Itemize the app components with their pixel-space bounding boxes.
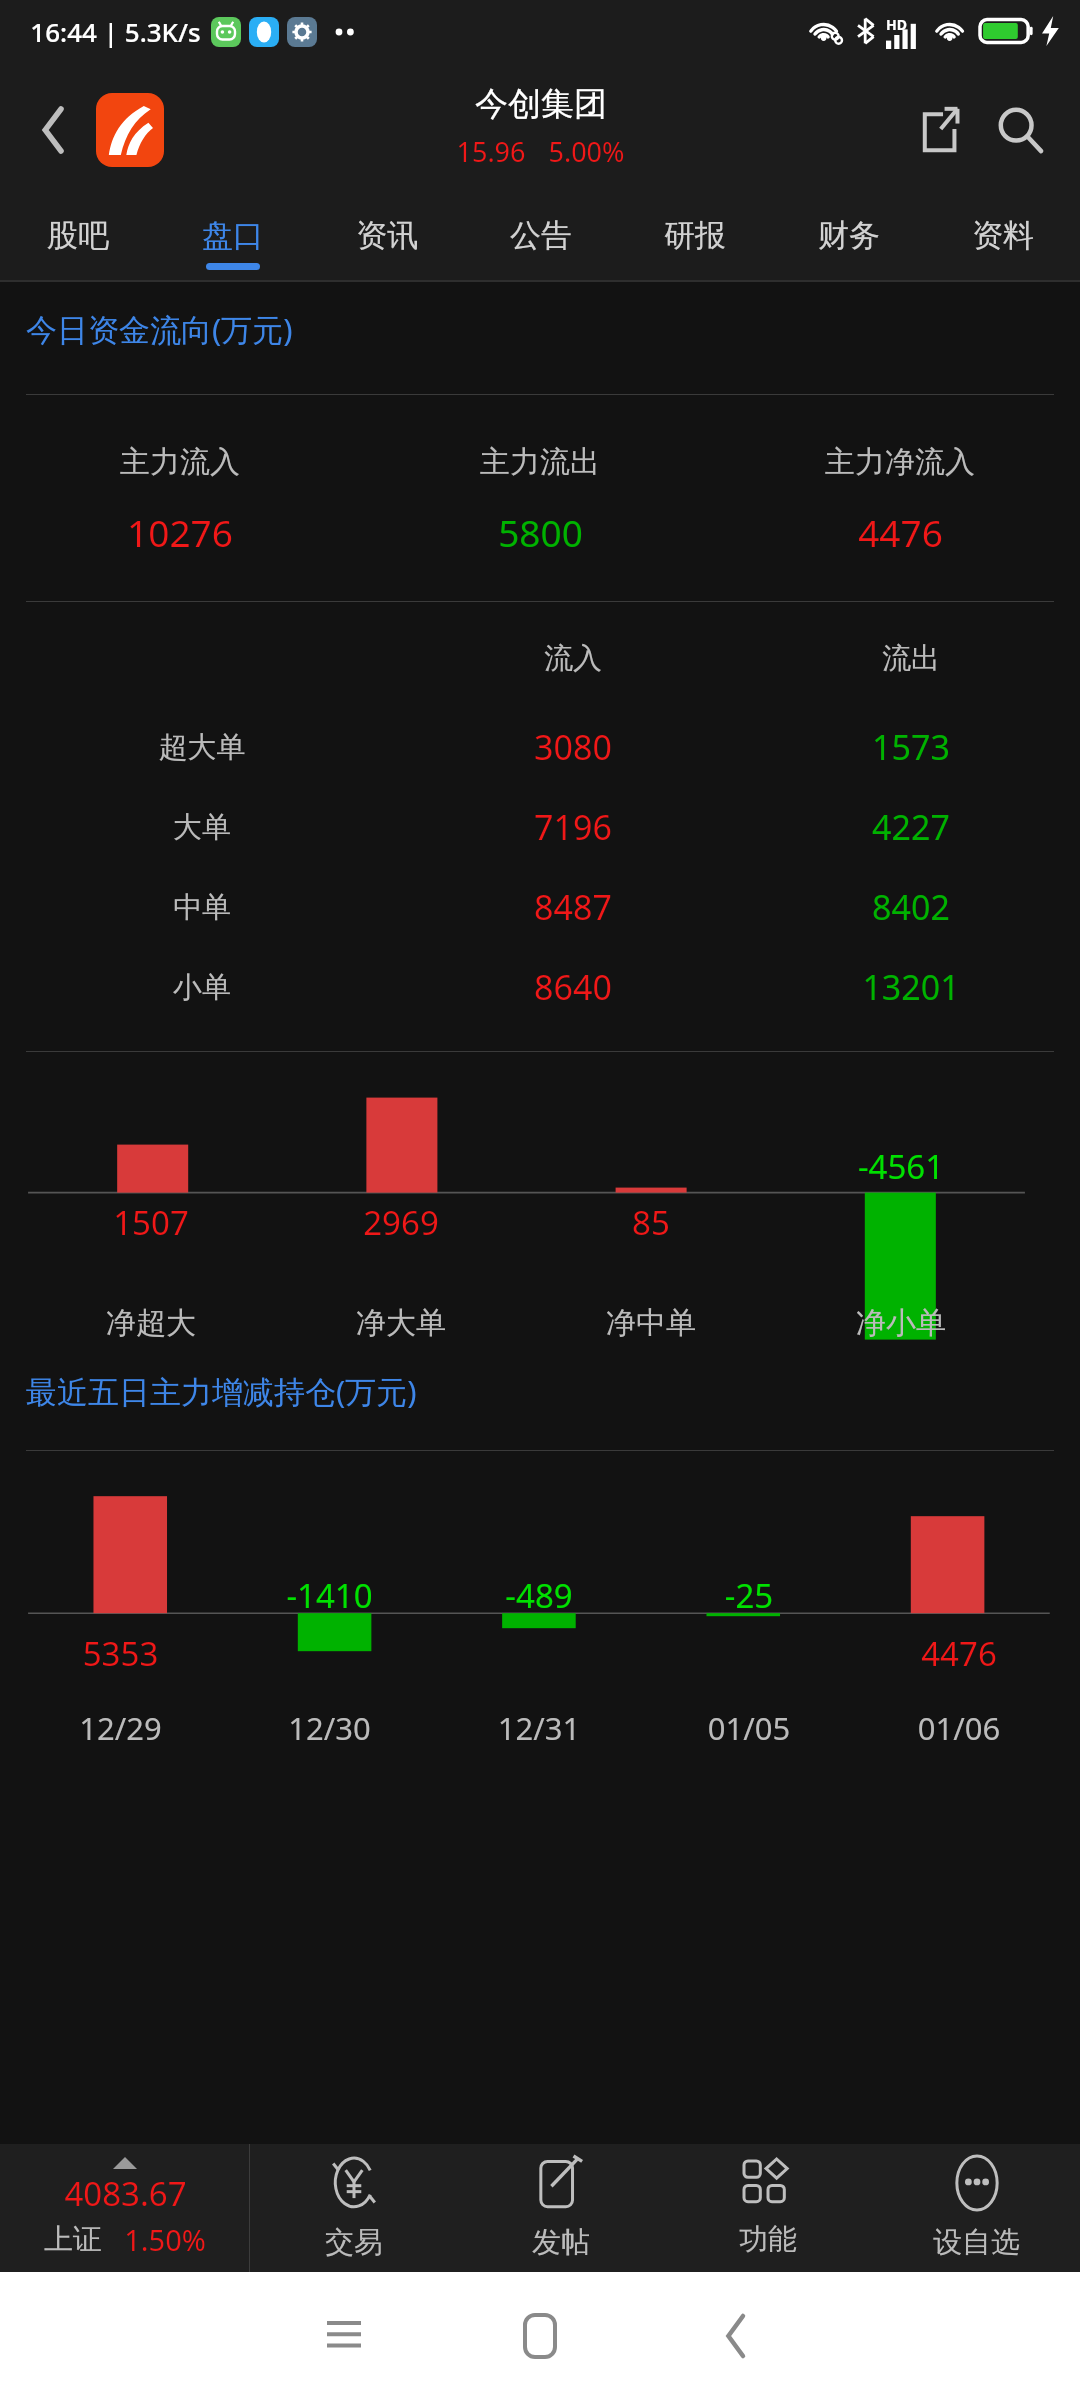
button[interactable]: Back (676, 2296, 796, 2376)
staticText: 12/29 (16, 1707, 225, 1749)
staticText (276, 1144, 526, 1189)
staticText: 净超大 (26, 1304, 276, 1342)
staticText: 8402 (742, 884, 1080, 930)
staticText: 4476 (858, 507, 943, 557)
staticText: 8640 (404, 964, 742, 1010)
button[interactable]: 财务 (772, 198, 926, 282)
staticText: 主力流出 (480, 443, 600, 481)
staticText (225, 1631, 434, 1676)
button[interactable]: 盘口 (155, 198, 310, 282)
staticText: 85 (526, 1200, 776, 1245)
button[interactable]: 4083.67 (0, 2144, 250, 2272)
staticText: 7196 (404, 804, 742, 850)
staticText: 交易 (325, 2224, 383, 2261)
staticText: -4561 (776, 1144, 1026, 1189)
staticText: 1.50% (124, 2220, 206, 2259)
staticText: 1507 (26, 1200, 276, 1245)
button[interactable]: 发帖 (457, 2144, 664, 2272)
button[interactable]: 股吧 (0, 198, 155, 282)
staticText: 15.96 (456, 133, 526, 170)
staticText: -25 (644, 1573, 854, 1618)
staticText (854, 1573, 1064, 1618)
staticText: 01/05 (644, 1707, 854, 1749)
staticText: 5800 (498, 507, 583, 557)
button[interactable]: 设自选 (872, 2144, 1080, 2272)
staticText: 股吧 (47, 216, 109, 255)
staticText: 超大单 (0, 729, 404, 766)
staticText: 资料 (972, 216, 1034, 255)
staticText: 研报 (664, 216, 726, 255)
staticText: 4227 (742, 804, 1080, 850)
staticText: 功能 (739, 2221, 797, 2258)
staticText (776, 1200, 1026, 1245)
staticText: 5353 (16, 1631, 225, 1676)
staticText: 今创集团 (475, 83, 607, 125)
staticText (26, 1144, 276, 1189)
staticText (526, 1144, 776, 1189)
button[interactable]: Share (902, 92, 978, 168)
staticText: 净小单 (776, 1304, 1026, 1342)
button[interactable]: App logo (96, 93, 164, 167)
staticText: 4476 (854, 1631, 1064, 1676)
staticText: 资讯 (356, 216, 418, 255)
staticText: 5.00% (548, 133, 625, 170)
staticText: 盘口 (202, 216, 264, 255)
staticText: 大单 (0, 809, 404, 846)
staticText: 2969 (276, 1200, 526, 1245)
button[interactable]: Back (26, 102, 82, 158)
button[interactable]: Search (982, 92, 1058, 168)
staticText: 16:44 | 5.3K/s (30, 14, 201, 49)
staticText: -1410 (225, 1573, 434, 1618)
staticText: 12/30 (225, 1707, 434, 1749)
button[interactable]: 功能 (664, 2144, 872, 2272)
staticText: 净中单 (526, 1304, 776, 1342)
button[interactable]: 交易 (250, 2144, 457, 2272)
staticText: 上证 (44, 2221, 102, 2258)
button[interactable]: 研报 (618, 198, 772, 282)
staticText: -489 (434, 1573, 644, 1618)
staticText: 13201 (742, 964, 1080, 1010)
staticText: 今日资金流向(万元) (26, 308, 1080, 350)
staticText: 净大单 (276, 1304, 526, 1342)
staticText: 4083.67 (64, 2171, 187, 2216)
staticText: 主力流入 (120, 443, 240, 481)
staticText: 小单 (0, 969, 404, 1006)
staticText: 10276 (127, 507, 233, 557)
button[interactable]: 资讯 (310, 198, 464, 282)
staticText: 1573 (742, 724, 1080, 770)
staticText: 设自选 (933, 2224, 1020, 2261)
staticText: 8487 (404, 884, 742, 930)
staticText: 流入 (404, 640, 742, 677)
button[interactable]: 资料 (926, 198, 1080, 282)
staticText: 中单 (0, 889, 404, 926)
button[interactable]: Recents (284, 2296, 404, 2376)
staticText: 12/31 (434, 1707, 644, 1749)
staticText: 最近五日主力增减持仓(万元) (26, 1370, 1080, 1412)
staticText (16, 1573, 225, 1618)
staticText: 财务 (818, 216, 880, 255)
button[interactable]: 公告 (464, 198, 618, 282)
staticText: 主力净流入 (825, 443, 975, 481)
staticText: 3080 (404, 724, 742, 770)
staticText: 发帖 (532, 2224, 590, 2261)
staticText: 01/06 (854, 1707, 1064, 1749)
button[interactable]: Home (480, 2296, 600, 2376)
staticText: HD (886, 15, 907, 34)
staticText: 流出 (742, 640, 1080, 677)
staticText: 公告 (510, 216, 572, 255)
